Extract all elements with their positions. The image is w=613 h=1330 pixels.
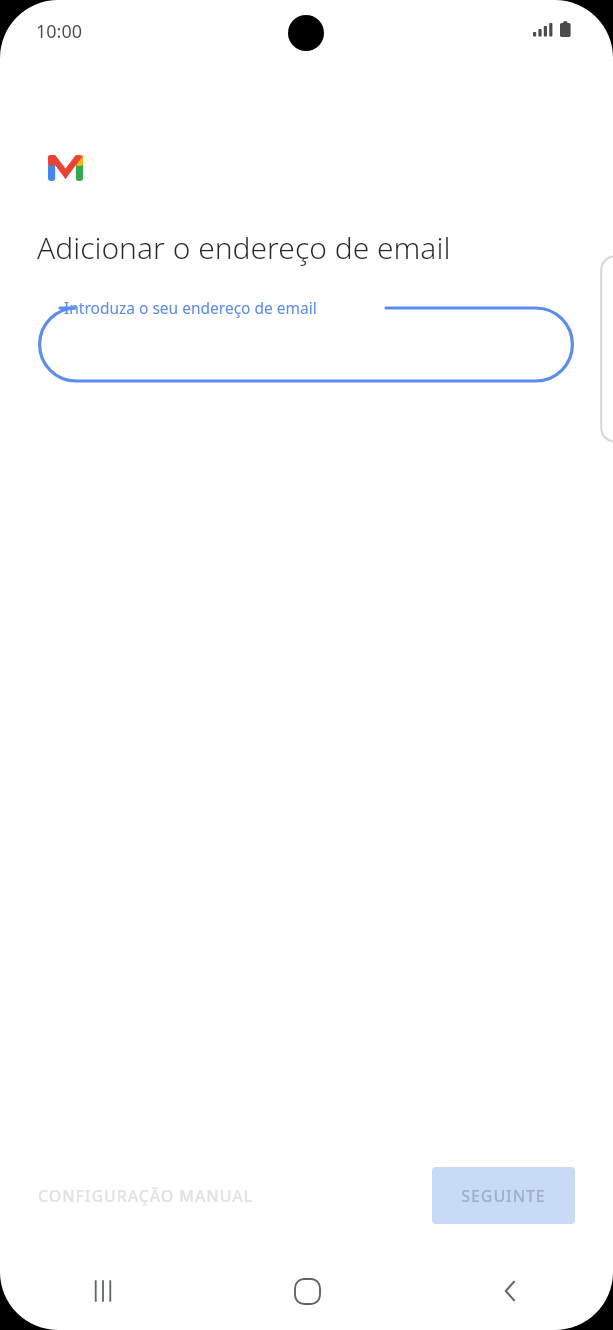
- button[interactable]: Introduza o seu endereço de email: [38, 296, 574, 396]
- staticText: Adicionar o endereço de email: [37, 227, 451, 268]
- staticText: 10:00: [36, 19, 83, 44]
- staticText: Introduza o seu endereço de email: [64, 297, 317, 318]
- button[interactable]: Home: [205, 1252, 409, 1330]
- button[interactable]: CONFIGURAÇÃO MANUAL: [24, 1171, 268, 1221]
- staticText: CONFIGURAÇÃO MANUAL: [38, 1185, 254, 1207]
- button[interactable]: Recent apps: [0, 1252, 205, 1330]
- button[interactable]: SEGUINTE: [432, 1167, 575, 1224]
- staticText: SEGUINTE: [461, 1185, 546, 1207]
- button[interactable]: Back: [409, 1252, 613, 1330]
